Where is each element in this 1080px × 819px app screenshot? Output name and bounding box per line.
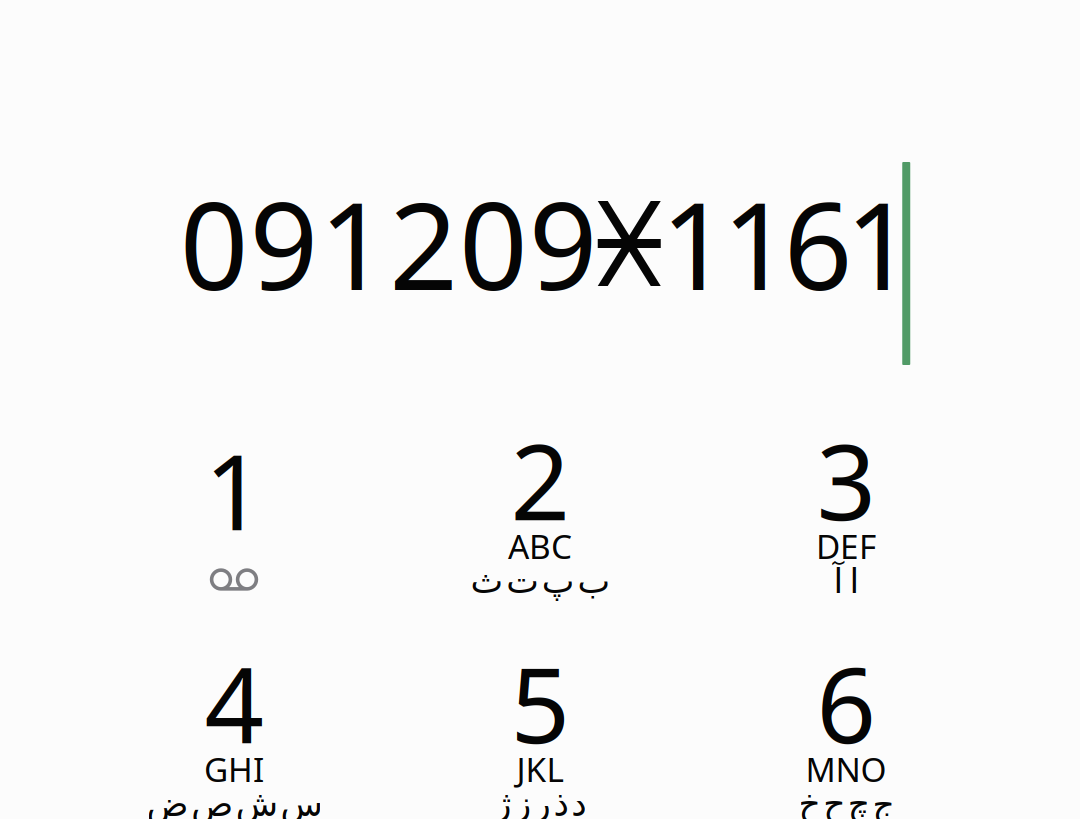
staticText: MNO [805,747,886,791]
staticText: ABC [508,524,572,568]
staticText: GHI [204,747,264,791]
staticText: 3 [816,411,875,549]
button[interactable]: 4 [81,596,387,819]
staticText: JKL [516,747,563,791]
staticText: 4 [204,634,263,772]
staticText: ب پ ت ث [470,561,610,601]
staticText: 6 [816,634,875,772]
staticText: س ش ص ض [146,784,322,819]
staticText: DEF [816,524,876,568]
staticText: ا آ [833,561,859,601]
staticText: 5 [510,634,569,772]
button[interactable]: 6 [693,596,999,819]
button[interactable]: 3 [693,373,999,596]
button[interactable]: 1 [81,373,387,596]
staticText: ج چ ح خ [798,784,894,819]
staticText: 1 [204,421,263,559]
button[interactable]: 5 [387,596,693,819]
button[interactable]: 2 [387,373,693,596]
staticText: 2 [510,411,569,549]
staticText: 091209 [180,164,598,323]
staticText: 1161 [661,164,914,323]
staticText: د ذ ر ز ژ [494,784,586,819]
